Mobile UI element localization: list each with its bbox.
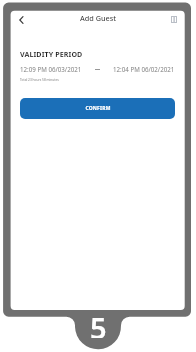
staticText: 12:04 PM 06/02/2021 <box>113 65 175 73</box>
staticText: 5 <box>90 308 107 338</box>
staticText: Add Guest <box>80 13 117 23</box>
staticText: VALIDITY PERIOD <box>20 49 83 59</box>
staticText: Total 23 hours 58 minutes <box>20 78 59 82</box>
staticText: CONFIRM <box>85 105 111 112</box>
button[interactable]: Calendar <box>167 12 181 26</box>
button[interactable]: Back <box>12 11 29 28</box>
staticText: 12:09 PM 06/03/2021 <box>20 65 82 73</box>
button[interactable]: CONFIRM <box>20 98 175 119</box>
